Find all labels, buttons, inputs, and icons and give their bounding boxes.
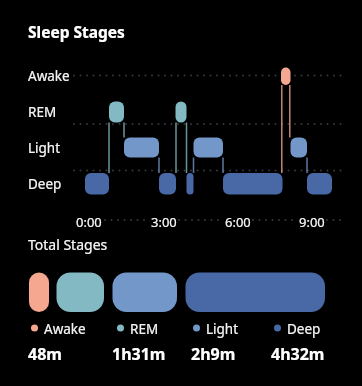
staticText: Light [206,320,239,338]
staticText: Deep [28,175,62,193]
staticText: 3:00 [151,213,177,231]
staticText: Awake [28,67,70,85]
staticText: 9:00 [299,213,325,231]
staticText: 4h32m [271,343,325,365]
staticText: Total Stages [28,235,108,254]
staticText: 1h31m [112,343,166,365]
staticText: 48m [28,343,62,365]
staticText: 6:00 [225,213,251,231]
staticText: 0:00 [76,213,102,231]
staticText: REM [28,103,57,121]
staticText: 2h9m [191,343,236,365]
staticText: Deep [287,320,321,338]
staticText: REM [130,320,159,338]
staticText: Sleep Stages [28,21,125,42]
staticText: Light [28,139,61,157]
staticText: Awake [44,320,86,338]
